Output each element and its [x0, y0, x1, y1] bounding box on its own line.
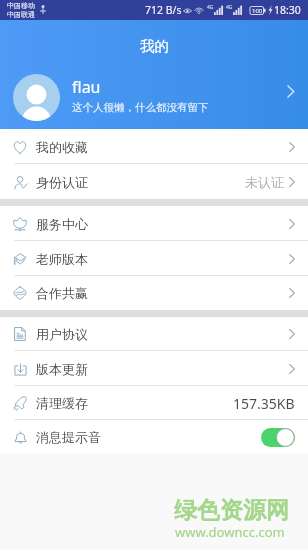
- button[interactable]: 版本更新: [0, 351, 308, 386]
- staticText: 157.35KB: [233, 394, 295, 413]
- staticText: 100: [252, 7, 263, 15]
- button[interactable]: 消息提示音: [0, 420, 308, 454]
- staticText: 我的收藏: [36, 139, 88, 155]
- staticText: 18:30: [274, 3, 301, 17]
- staticText: 未认证: [245, 174, 284, 190]
- staticText: 用户协议: [36, 326, 88, 342]
- staticText: 老师版本: [36, 251, 88, 267]
- staticText: 我的: [140, 37, 169, 55]
- button[interactable]: 身份认证: [0, 164, 308, 199]
- button[interactable]: 老师版本: [0, 241, 308, 276]
- staticText: 4G: [226, 4, 233, 11]
- button[interactable]: 清理缓存: [0, 386, 308, 420]
- button[interactable]: flau: [0, 73, 308, 123]
- staticText: 712 B/s: [145, 3, 182, 17]
- staticText: 中国联通: [7, 10, 35, 19]
- staticText: 身份认证: [36, 174, 88, 190]
- button[interactable]: 消息提示音开关: [261, 428, 295, 447]
- staticText: 4G: [207, 4, 214, 11]
- staticText: 版本更新: [36, 361, 88, 377]
- staticText: 清理缓存: [36, 395, 88, 411]
- button[interactable]: 我的收藏: [0, 129, 308, 164]
- button[interactable]: 合作共赢: [0, 276, 308, 310]
- staticText: flau: [72, 76, 101, 98]
- button[interactable]: 服务中心: [0, 206, 308, 241]
- staticText: 服务中心: [36, 216, 88, 232]
- staticText: 这个人很懒，什么都没有留下: [72, 101, 209, 114]
- staticText: 消息提示音: [36, 429, 101, 445]
- staticText: www.downcc.com: [175, 523, 285, 541]
- staticText: 合作共赢: [36, 285, 88, 301]
- staticText: 中国移动: [7, 1, 35, 10]
- button[interactable]: 用户协议: [0, 317, 308, 351]
- staticText: 绿色资源网: [174, 496, 289, 525]
